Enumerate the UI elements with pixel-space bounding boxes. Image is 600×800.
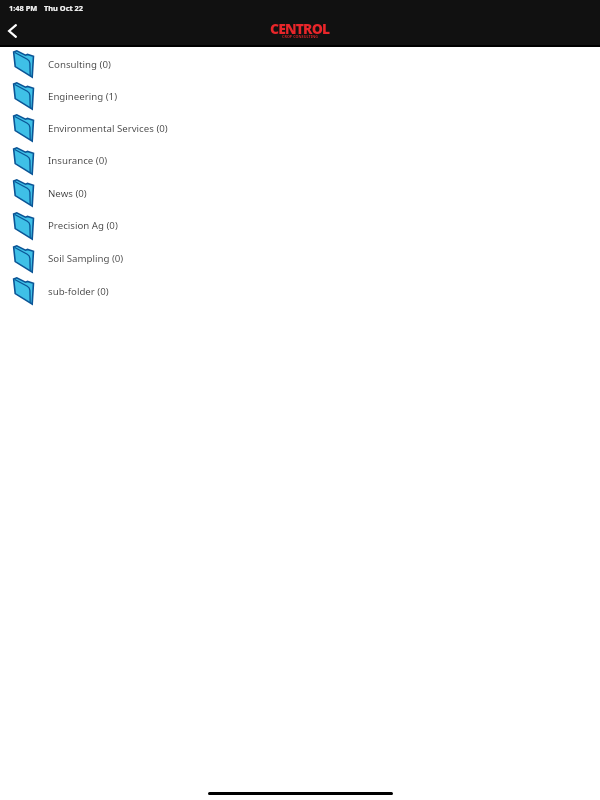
- button[interactable]: sub-folder (0): [0, 275, 600, 307]
- staticText: Thu Oct 22: [44, 3, 84, 13]
- button[interactable]: News (0): [0, 177, 600, 209]
- staticText: Insurance (0): [48, 154, 108, 167]
- staticText: Soil Sampling (0): [48, 252, 124, 265]
- button[interactable]: Insurance (0): [0, 144, 600, 177]
- staticText: Engineering (1): [48, 90, 118, 103]
- staticText: News (0): [48, 187, 87, 200]
- staticText: Environmental Services (0): [48, 122, 168, 135]
- staticText: CENTROL: [270, 19, 330, 38]
- staticText: sub-folder (0): [48, 285, 109, 298]
- button[interactable]: Environmental Services (0): [0, 112, 600, 144]
- button[interactable]: Precision Ag (0): [0, 209, 600, 242]
- staticText: CROP CONSULTING: [282, 34, 318, 39]
- button[interactable]: Engineering (1): [0, 80, 600, 112]
- staticText: Consulting (0): [48, 58, 111, 71]
- button[interactable]: Soil Sampling (0): [0, 242, 600, 275]
- button[interactable]: Consulting (0): [0, 48, 600, 80]
- button[interactable]: Back: [0, 17, 26, 45]
- staticText: Precision Ag (0): [48, 219, 118, 232]
- staticText: 1:48 PM: [9, 3, 38, 13]
